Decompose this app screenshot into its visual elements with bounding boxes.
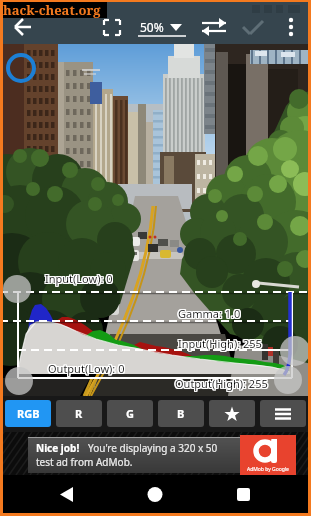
button[interactable]: G bbox=[107, 400, 153, 427]
staticText: Gamma: 1.0 bbox=[178, 306, 241, 321]
staticText: Input(High): 255 bbox=[177, 335, 261, 350]
staticText: Output(Low): 0 bbox=[48, 361, 125, 376]
button[interactable]: AdMob by Google bbox=[240, 435, 296, 475]
staticText: Output(High): 255 bbox=[174, 376, 267, 391]
staticText: B bbox=[177, 406, 185, 421]
staticText: Input(High): 255 bbox=[178, 336, 262, 351]
staticText: AdMob by Google bbox=[247, 466, 289, 473]
staticText: Input(Low): 0 bbox=[46, 271, 114, 286]
staticText: Input(Low): 0 bbox=[46, 270, 114, 285]
button[interactable] bbox=[98, 14, 128, 41]
staticText: Input(Low): 0 bbox=[44, 270, 112, 285]
staticText: Output(Low): 0 bbox=[47, 361, 124, 376]
button[interactable]: R bbox=[56, 400, 102, 427]
button[interactable] bbox=[125, 475, 185, 516]
staticText: Output(High): 255 bbox=[174, 375, 267, 390]
button[interactable] bbox=[280, 14, 304, 41]
staticText: You're displaying a 320 x 50 bbox=[88, 441, 218, 455]
staticText: Gamma: 1.0 bbox=[177, 307, 240, 322]
button[interactable] bbox=[209, 400, 255, 427]
staticText: Output(High): 255 bbox=[175, 377, 268, 392]
button[interactable] bbox=[213, 475, 273, 516]
staticText: Output(Low): 0 bbox=[48, 362, 125, 377]
staticText: Output(High): 255 bbox=[175, 375, 268, 390]
staticText: Output(Low): 0 bbox=[49, 361, 126, 376]
staticText: Output(High): 255 bbox=[174, 377, 267, 392]
staticText: Nice job! bbox=[36, 441, 80, 455]
staticText: Input(High): 255 bbox=[177, 336, 261, 351]
staticText: Output(High): 255 bbox=[176, 377, 269, 392]
staticText: Gamma: 1.0 bbox=[179, 305, 242, 320]
button[interactable] bbox=[40, 475, 100, 516]
staticText: Gamma: 1.0 bbox=[178, 305, 241, 320]
staticText: Input(Low): 0 bbox=[45, 271, 113, 286]
button[interactable] bbox=[196, 14, 232, 41]
staticText: Input(High): 255 bbox=[179, 335, 263, 350]
staticText: Input(High): 255 bbox=[178, 337, 262, 352]
button[interactable]: RGB bbox=[5, 400, 51, 427]
staticText: G bbox=[126, 406, 134, 421]
staticText: Gamma: 1.0 bbox=[177, 306, 240, 321]
button[interactable] bbox=[8, 17, 40, 39]
staticText: Output(Low): 0 bbox=[48, 360, 125, 375]
staticText: Input(High): 255 bbox=[179, 337, 263, 352]
button[interactable] bbox=[28, 437, 240, 473]
staticText: Input(Low): 0 bbox=[45, 270, 113, 285]
button[interactable]: B bbox=[158, 400, 204, 427]
staticText: Output(High): 255 bbox=[176, 376, 269, 391]
button[interactable] bbox=[260, 400, 306, 427]
staticText: Gamma: 1.0 bbox=[179, 306, 242, 321]
staticText: RGB bbox=[17, 406, 40, 421]
staticText: Input(Low): 0 bbox=[46, 272, 114, 287]
staticText: R bbox=[75, 406, 83, 421]
staticText: Input(Low): 0 bbox=[44, 271, 112, 286]
staticText: Input(High): 255 bbox=[178, 335, 262, 350]
staticText: test ad from AdMob. bbox=[36, 455, 133, 469]
staticText: Input(High): 255 bbox=[177, 337, 261, 352]
staticText: Input(High): 255 bbox=[179, 336, 263, 351]
staticText: Output(Low): 0 bbox=[49, 362, 126, 377]
staticText: Output(Low): 0 bbox=[47, 360, 124, 375]
staticText: Output(High): 255 bbox=[176, 375, 269, 390]
staticText: Output(Low): 0 bbox=[49, 360, 126, 375]
button[interactable] bbox=[238, 14, 270, 41]
staticText: Input(Low): 0 bbox=[44, 272, 112, 287]
staticText: Output(Low): 0 bbox=[47, 362, 124, 377]
staticText: Gamma: 1.0 bbox=[179, 307, 242, 322]
staticText: Output(High): 255 bbox=[175, 376, 268, 391]
staticText: Gamma: 1.0 bbox=[177, 305, 240, 320]
staticText: Input(Low): 0 bbox=[45, 272, 113, 287]
staticText: hack-cheat.org bbox=[3, 1, 101, 19]
button[interactable] bbox=[134, 14, 190, 41]
staticText: Gamma: 1.0 bbox=[178, 307, 241, 322]
staticText: 50% bbox=[140, 19, 164, 35]
